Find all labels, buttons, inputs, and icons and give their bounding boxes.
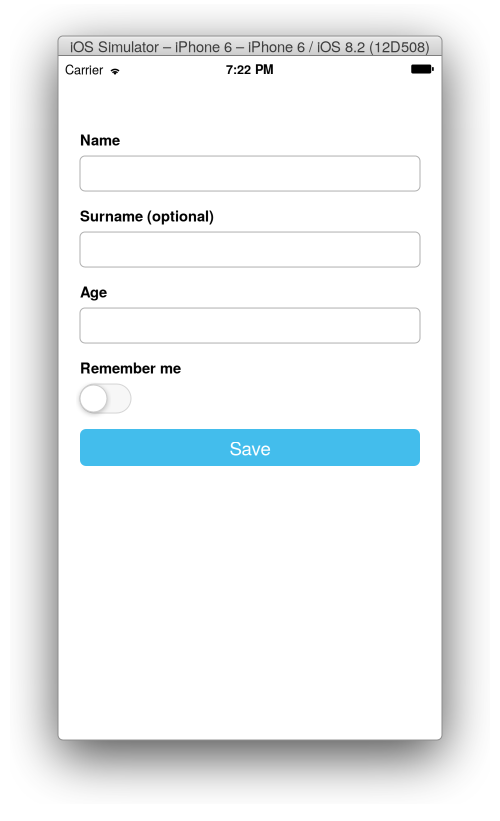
button[interactable]: Save [80,429,420,466]
button[interactable]: Surname (optional) [80,232,420,267]
staticText: Surname (optional) [80,205,214,226]
staticText: Name [80,129,120,150]
staticText: Age [80,281,107,302]
staticText: Remember me [80,357,181,378]
button[interactable]: Name [80,156,420,191]
button[interactable]: Remember me [80,384,131,413]
staticText: iOS Simulator – iPhone 6 – iPhone 6 / iO… [70,35,430,56]
button[interactable]: Age [80,308,420,343]
staticText: Save [229,434,270,461]
staticText: Carrier [65,60,103,78]
staticText: 7:22 PM [226,60,274,78]
